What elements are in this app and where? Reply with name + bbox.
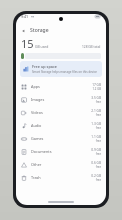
staticText: 2.1 GB: [91, 109, 101, 113]
staticText: Audio: [31, 123, 42, 128]
staticText: 1.3 GB: [91, 122, 101, 126]
staticText: 3.5 GB: [91, 96, 101, 100]
button[interactable]: Apps: [16, 80, 106, 93]
staticText: 0.9 GB: [91, 148, 101, 152]
staticText: free: [95, 126, 101, 130]
staticText: free: [95, 113, 101, 117]
button[interactable]: Other: [16, 158, 106, 171]
staticText: Trash: [31, 175, 41, 180]
staticText: Smart Storage helps manage files on this…: [32, 70, 97, 74]
button[interactable]: Trash: [16, 171, 106, 184]
staticText: Documents: [31, 149, 52, 154]
staticText: free: [95, 178, 101, 182]
button[interactable]: Documents: [16, 145, 106, 158]
staticText: free: [95, 165, 101, 169]
button[interactable]: Audio: [16, 119, 106, 132]
staticText: GB used: [35, 44, 49, 49]
button[interactable]: Free up space: [20, 61, 102, 77]
button[interactable]: Videos: [16, 106, 106, 119]
staticText: free: [95, 100, 101, 104]
staticText: free: [95, 139, 101, 143]
staticText: 0.2 GB: [91, 174, 101, 178]
staticText: free: [95, 152, 101, 156]
staticText: 9:41: [21, 14, 29, 19]
staticText: Free up space: [32, 64, 58, 69]
staticText: 0.6 GB: [91, 161, 101, 165]
button[interactable]: Images: [16, 93, 106, 106]
button[interactable]: Games: [16, 132, 106, 145]
staticText: Images: [31, 97, 45, 102]
staticText: Games: [31, 136, 44, 141]
staticText: 128 GB total: [82, 45, 101, 49]
staticText: Apps: [31, 84, 40, 89]
staticText: 1.1 GB: [91, 135, 101, 139]
staticText: Storage: [30, 27, 49, 34]
button[interactable]: Back: [20, 27, 28, 35]
staticText: 17 GB: [92, 83, 101, 87]
staticText: Other: [31, 162, 42, 167]
staticText: 1.2 GB: [92, 87, 101, 91]
staticText: Videos: [31, 110, 43, 115]
staticText: 15: [21, 36, 34, 51]
